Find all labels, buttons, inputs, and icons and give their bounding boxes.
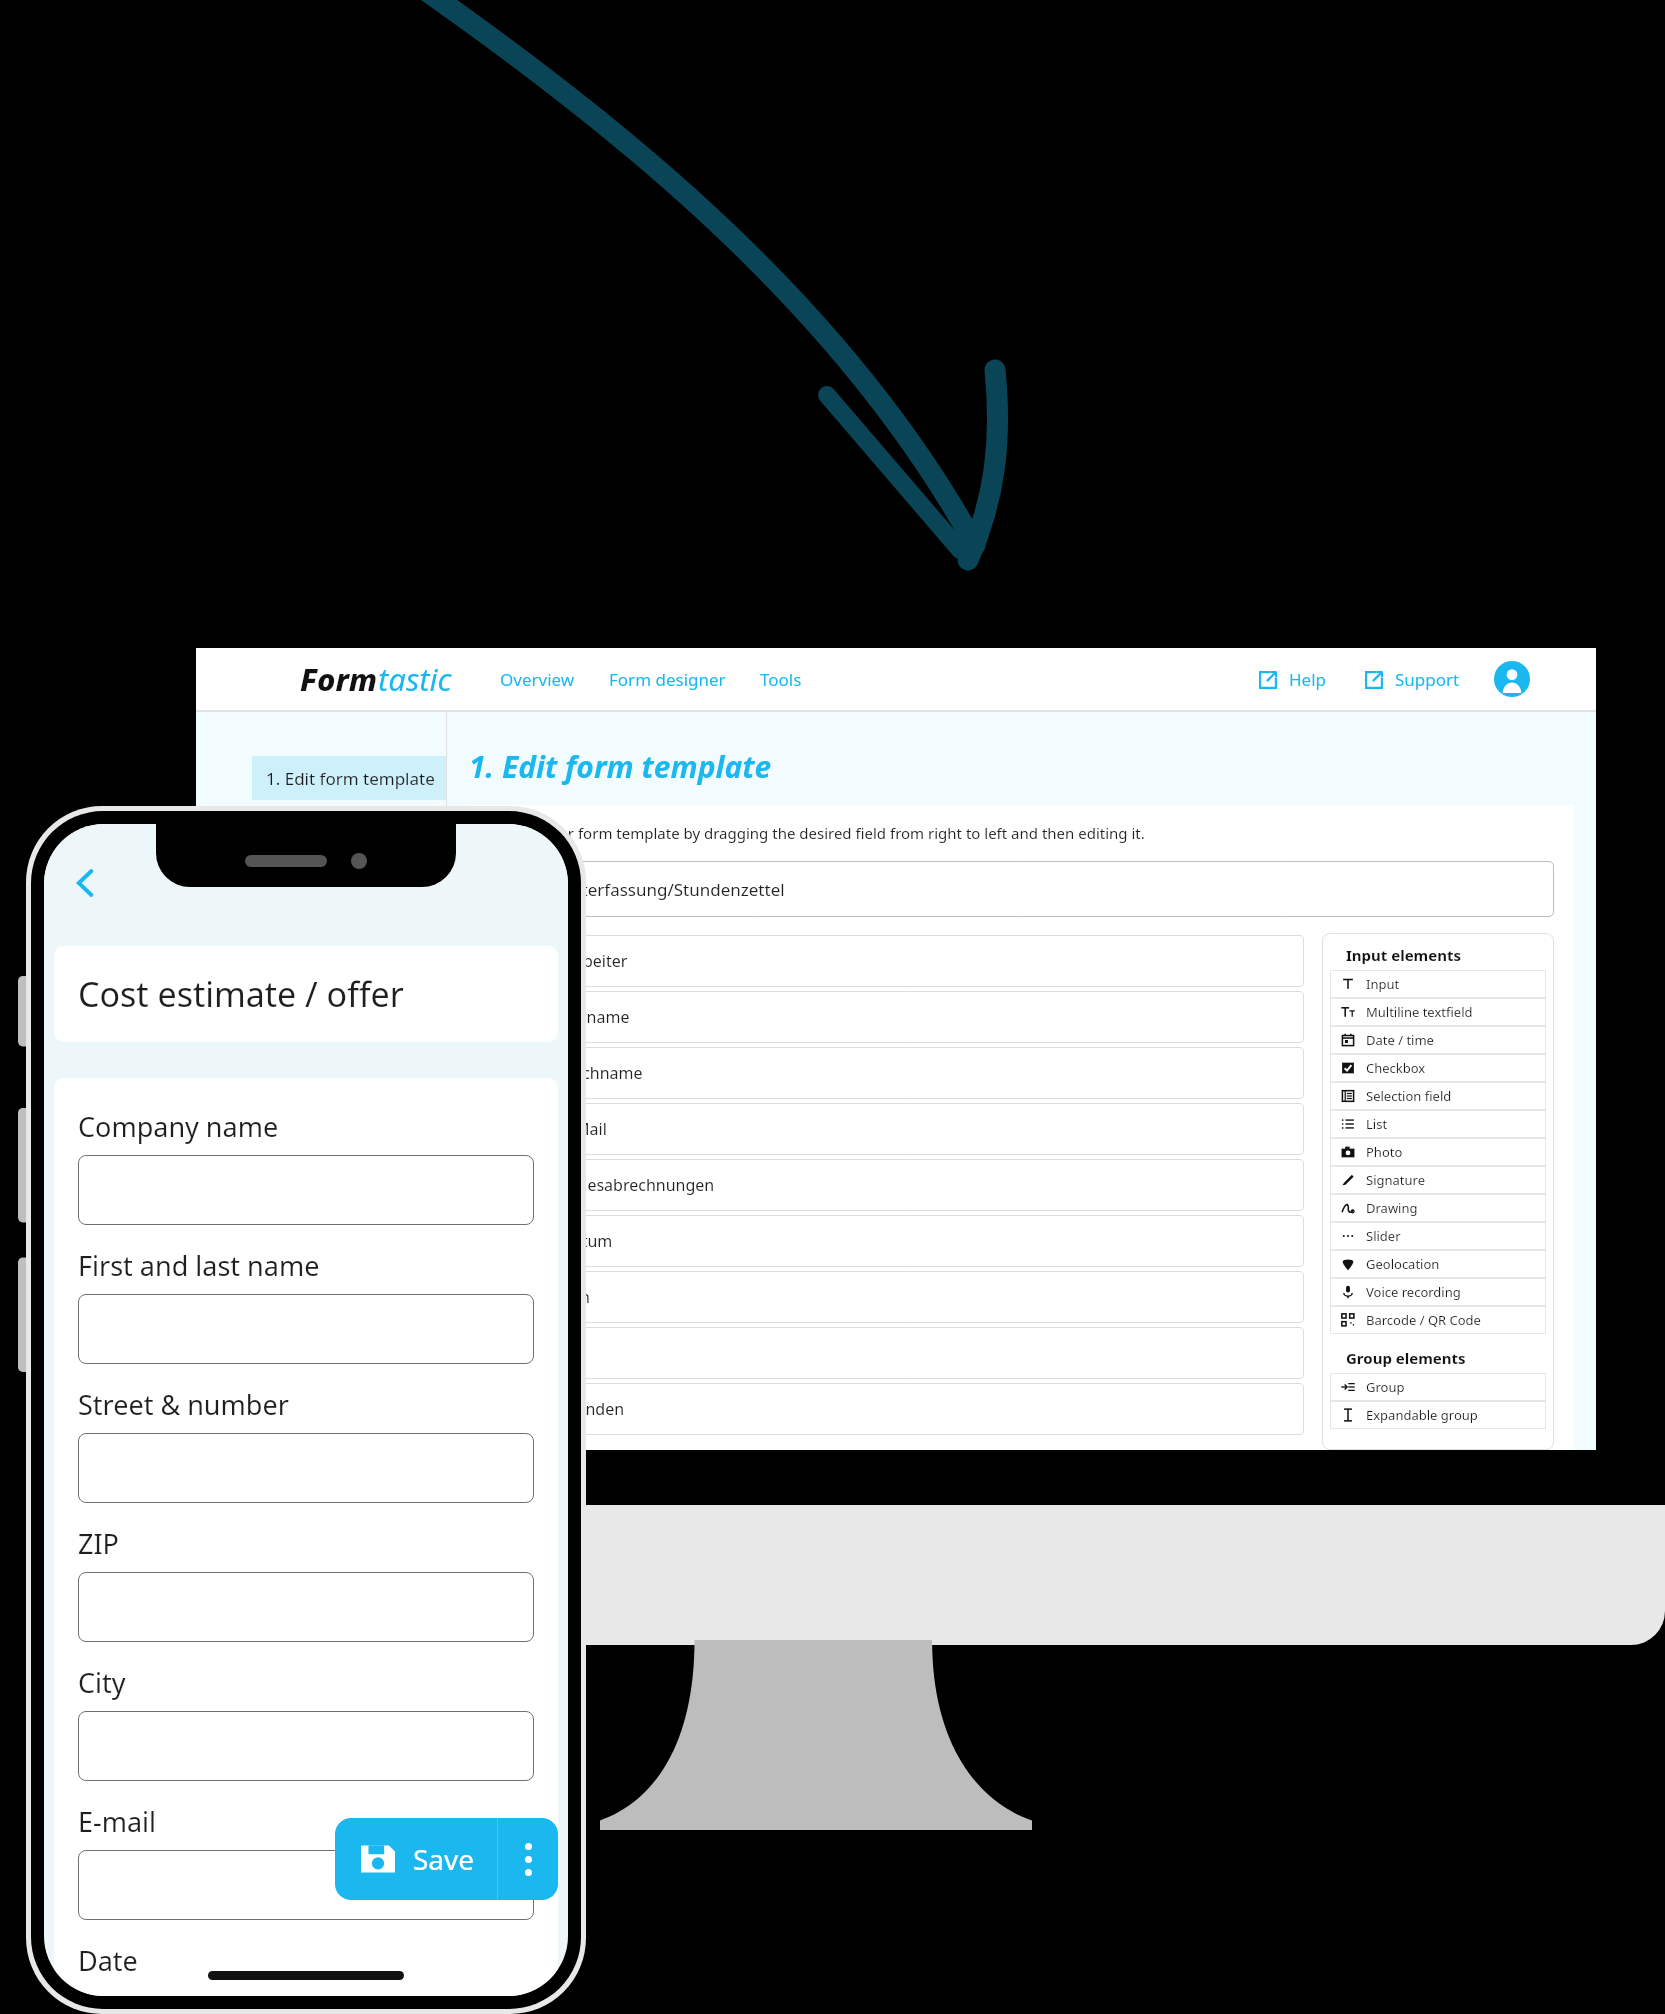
staticText: 1. Edit form template (469, 746, 772, 787)
staticText: Datum (561, 1230, 613, 1252)
button[interactable]: Group (1330, 1373, 1546, 1401)
button[interactable]: Checkbox (1330, 1054, 1546, 1082)
staticText: Multiline textfield (1366, 1003, 1473, 1021)
button[interactable]: Support (1363, 662, 1460, 697)
staticText: Support (1395, 668, 1460, 691)
button[interactable]: 1. Edit form template (252, 756, 446, 800)
staticText: Cost estimate / offer (78, 971, 404, 1017)
staticText: Street & number (78, 1386, 289, 1423)
button[interactable]: Help (1257, 662, 1327, 697)
staticText: Arbeitszeiterfassung/Stundenzettel (503, 878, 785, 901)
staticText: E-Mail (561, 1118, 607, 1140)
staticText: Date (78, 1942, 138, 1979)
staticText: Design your form template by dragging th… (489, 823, 1145, 843)
staticText: Group (1366, 1378, 1405, 1396)
staticText: Form (300, 658, 378, 700)
button[interactable]: Nachname (507, 1047, 1304, 1099)
button[interactable]: Form designer (607, 662, 728, 697)
staticText: Bis (561, 1342, 584, 1364)
button[interactable]: E-Mail (507, 1103, 1304, 1155)
staticText: Date / time (1366, 1031, 1434, 1049)
button[interactable]: Overview (498, 662, 577, 697)
button[interactable]: Vorname (507, 991, 1304, 1043)
button[interactable]: Back (58, 855, 114, 911)
button[interactable] (78, 1433, 534, 1503)
staticText: Nachname (561, 1062, 643, 1084)
button[interactable]: Multiline textfield (1330, 998, 1546, 1026)
staticText: Voice recording (1366, 1283, 1461, 1301)
staticText: Help (1289, 668, 1327, 691)
button[interactable]: Input (1330, 970, 1546, 998)
button[interactable]: Voice recording (1330, 1278, 1546, 1306)
staticText: City (78, 1664, 126, 1701)
staticText: First and last name (78, 1247, 320, 1284)
button[interactable]: Drawing (1330, 1194, 1546, 1222)
button[interactable]: 2. General settings (252, 824, 446, 858)
button[interactable] (78, 1850, 534, 1920)
staticText: Input elements (1346, 945, 1461, 965)
button[interactable]: More options (498, 1818, 558, 1900)
staticText: Signature (1366, 1171, 1425, 1189)
staticText: Input (1366, 975, 1400, 993)
staticText: Overview (500, 668, 575, 691)
button[interactable] (78, 1572, 534, 1642)
staticText: Mitarbeiter (543, 950, 628, 972)
button[interactable]: Barcode / QR Code (1330, 1306, 1546, 1334)
staticText: Checkbox (1366, 1059, 1426, 1077)
staticText: Group elements (1346, 1348, 1466, 1368)
button[interactable]: Save (335, 1818, 558, 1900)
staticText: Tools (760, 668, 802, 691)
staticText: Drawing (1366, 1199, 1418, 1217)
staticText: tastic (378, 658, 452, 700)
button[interactable]: Photo (1330, 1138, 1546, 1166)
button[interactable]: Von (507, 1271, 1304, 1323)
button[interactable]: Signature (1330, 1166, 1546, 1194)
staticText: Form designer (609, 668, 726, 691)
staticText: Expandable group (1366, 1406, 1478, 1424)
staticText: Stunden (561, 1398, 625, 1420)
staticText: Save (413, 1840, 475, 1878)
button[interactable]: Tools (758, 662, 804, 697)
button[interactable] (78, 1155, 534, 1225)
staticText: Selection field (1366, 1087, 1452, 1105)
button[interactable]: List (1330, 1110, 1546, 1138)
staticText: Company name (78, 1108, 279, 1145)
button[interactable]: Tagesabrechnungen (507, 1159, 1304, 1211)
staticText: 1. Edit form template (266, 767, 435, 790)
button[interactable]: Expandable group (1330, 1401, 1546, 1429)
button[interactable]: Slider (1330, 1222, 1546, 1250)
staticText: Geolocation (1366, 1255, 1440, 1273)
staticText: E-mail (78, 1803, 157, 1840)
staticText: Slider (1366, 1227, 1401, 1245)
button[interactable]: Geolocation (1330, 1250, 1546, 1278)
staticText: Tagesabrechnungen (561, 1174, 715, 1196)
button[interactable]: Account (1494, 661, 1530, 697)
button[interactable]: Selection field (1330, 1082, 1546, 1110)
staticText: Photo (1366, 1143, 1403, 1161)
button[interactable]: Stunden (507, 1383, 1304, 1435)
staticText: List (1366, 1115, 1388, 1133)
staticText: Barcode / QR Code (1366, 1311, 1481, 1329)
button[interactable]: Datum (507, 1215, 1304, 1267)
button[interactable] (78, 1294, 534, 1364)
button[interactable]: Date / time (1330, 1026, 1546, 1054)
button[interactable]: Mitarbeiter (489, 935, 1304, 987)
button[interactable] (78, 1711, 534, 1781)
staticText: Von (561, 1286, 590, 1308)
button[interactable]: Arbeitszeiterfassung/Stundenzettel (489, 861, 1554, 917)
button[interactable]: Cost estimate / offer (54, 946, 558, 1042)
button[interactable]: Bis (507, 1327, 1304, 1379)
staticText: Vorname (561, 1006, 630, 1028)
staticText: ZIP (78, 1525, 119, 1562)
